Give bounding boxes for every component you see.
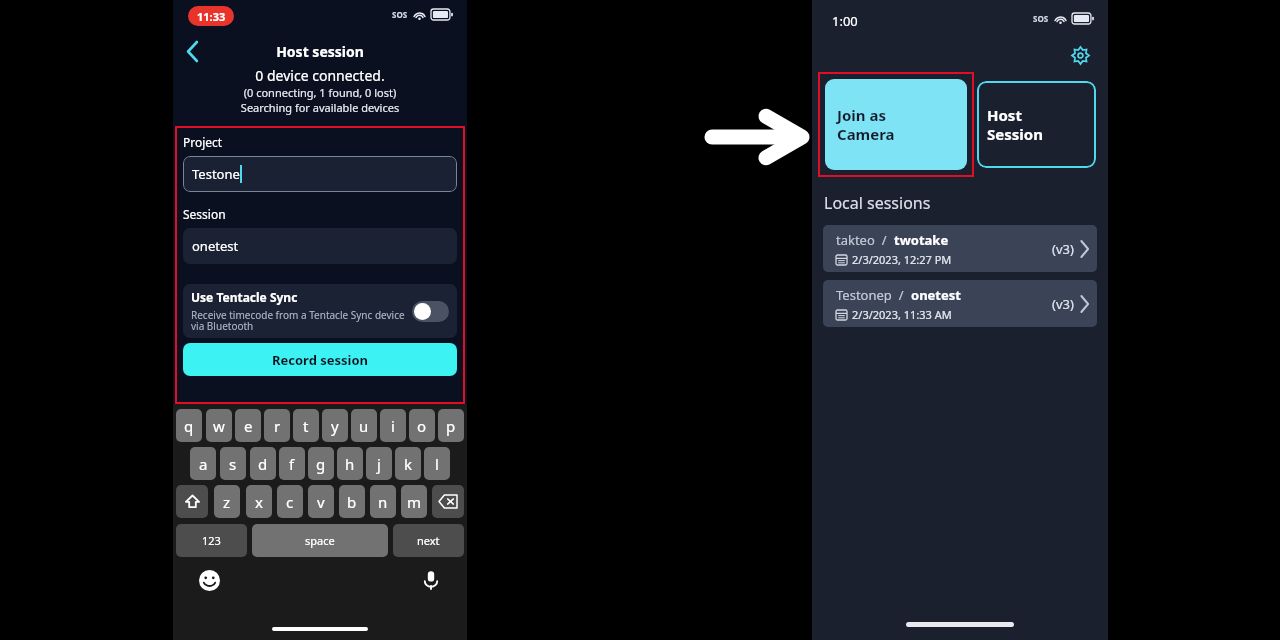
button[interactable]: s — [220, 447, 246, 480]
staticText: Use Tentacle Sync — [191, 289, 298, 305]
button[interactable]: n — [370, 485, 396, 518]
button[interactable]: z — [214, 485, 240, 518]
button[interactable]: u — [351, 409, 377, 442]
staticText: next — [417, 533, 440, 548]
button[interactable]: Testone — [183, 156, 457, 192]
staticText: Searching for available devices — [173, 100, 467, 115]
staticText: 1:00 — [832, 12, 858, 30]
staticText: Project — [183, 134, 223, 150]
staticText: Receive timecode from a Tentacle Sync de… — [191, 308, 406, 333]
staticText: b — [347, 492, 357, 512]
staticText: n — [378, 492, 388, 512]
staticText: SOS — [392, 9, 408, 20]
button[interactable]: x — [246, 485, 272, 518]
staticText: q — [184, 416, 194, 436]
button[interactable]: y — [322, 409, 348, 442]
staticText: 11:33 — [197, 9, 226, 24]
staticText: m — [407, 492, 422, 512]
button[interactable]: Testonep — [823, 280, 1097, 327]
button[interactable]: c — [277, 485, 303, 518]
staticText: Session — [183, 206, 226, 222]
staticText: c — [286, 492, 294, 512]
staticText: h — [345, 454, 355, 474]
staticText: (0 connecting, 1 found, 0 lost) — [173, 85, 467, 100]
button[interactable]: p — [438, 409, 464, 442]
staticText: u — [359, 416, 369, 436]
staticText: SOS — [1033, 13, 1049, 24]
staticText: 0 device connected. — [173, 66, 467, 85]
button[interactable]: q — [176, 409, 202, 442]
button[interactable]: h — [337, 447, 363, 480]
staticText: s — [229, 454, 237, 474]
staticText: / — [892, 286, 911, 304]
button[interactable]: b — [339, 485, 365, 518]
staticText: 2/3/2023, 11:33 AM — [852, 307, 952, 322]
button[interactable]: m — [401, 485, 427, 518]
button[interactable]: Use Tentacle Sync — [183, 284, 457, 338]
staticText: d — [258, 454, 268, 474]
button[interactable]: i — [380, 409, 406, 442]
button[interactable]: onetest — [183, 228, 457, 264]
button[interactable]: v — [308, 485, 334, 518]
staticText: (v3) — [1052, 240, 1074, 258]
staticText: a — [199, 454, 208, 474]
button[interactable]: Use Tentacle Sync toggle — [412, 301, 449, 322]
button[interactable]: k — [395, 447, 421, 480]
button[interactable]: Back — [175, 38, 209, 65]
staticText: Local sessions — [824, 192, 931, 214]
button[interactable]: f — [279, 447, 305, 480]
button[interactable]: e — [235, 409, 261, 442]
button[interactable]: Backspace — [432, 485, 464, 518]
staticText: z — [223, 492, 231, 512]
button[interactable]: Settings — [1067, 42, 1093, 68]
staticText: onetest — [911, 286, 961, 304]
staticText: w — [213, 416, 225, 436]
staticText: i — [391, 416, 395, 436]
staticText: f — [289, 454, 295, 474]
staticText: onetest — [192, 237, 239, 255]
button[interactable]: Host Session — [977, 81, 1096, 168]
staticText: space — [305, 533, 335, 548]
staticText: Join as Camera — [837, 105, 895, 144]
other: Flow arrow — [708, 111, 808, 163]
button[interactable]: w — [206, 409, 232, 442]
button[interactable]: a — [190, 447, 216, 480]
staticText: v — [317, 492, 325, 512]
staticText: p — [446, 416, 456, 436]
button[interactable]: 123 — [176, 524, 247, 557]
staticText: Testonep — [836, 286, 892, 304]
button[interactable]: Record session — [183, 343, 457, 376]
button[interactable]: space — [252, 524, 388, 557]
button[interactable]: g — [308, 447, 334, 480]
staticText: twotake — [894, 231, 949, 249]
staticText: x — [255, 492, 263, 512]
button[interactable]: next — [393, 524, 464, 557]
button[interactable]: t — [293, 409, 319, 442]
button[interactable]: Shift — [176, 485, 208, 518]
staticText: g — [316, 454, 326, 474]
button[interactable]: l — [424, 447, 450, 480]
staticText: l — [435, 454, 439, 474]
staticText: takteo — [836, 231, 875, 249]
staticText: e — [244, 416, 253, 436]
staticText: Record session — [272, 351, 369, 369]
button[interactable]: Emoji — [197, 568, 221, 592]
staticText: Host Session — [987, 105, 1043, 144]
button[interactable]: takteo — [823, 225, 1097, 272]
staticText: r — [274, 416, 281, 436]
button[interactable]: Join as Camera — [825, 79, 967, 170]
staticText: / — [875, 231, 894, 249]
button[interactable]: r — [264, 409, 290, 442]
staticText: y — [331, 416, 339, 436]
button[interactable]: Voice input — [419, 568, 443, 592]
staticText: k — [404, 454, 413, 474]
button[interactable]: j — [366, 447, 392, 480]
staticText: o — [417, 416, 427, 436]
button[interactable]: o — [409, 409, 435, 442]
staticText: 123 — [202, 533, 221, 548]
button[interactable]: d — [250, 447, 276, 480]
staticText: Host session — [173, 42, 467, 61]
staticText: (v3) — [1052, 295, 1074, 313]
staticText: j — [377, 454, 381, 474]
staticText: t — [303, 416, 309, 436]
